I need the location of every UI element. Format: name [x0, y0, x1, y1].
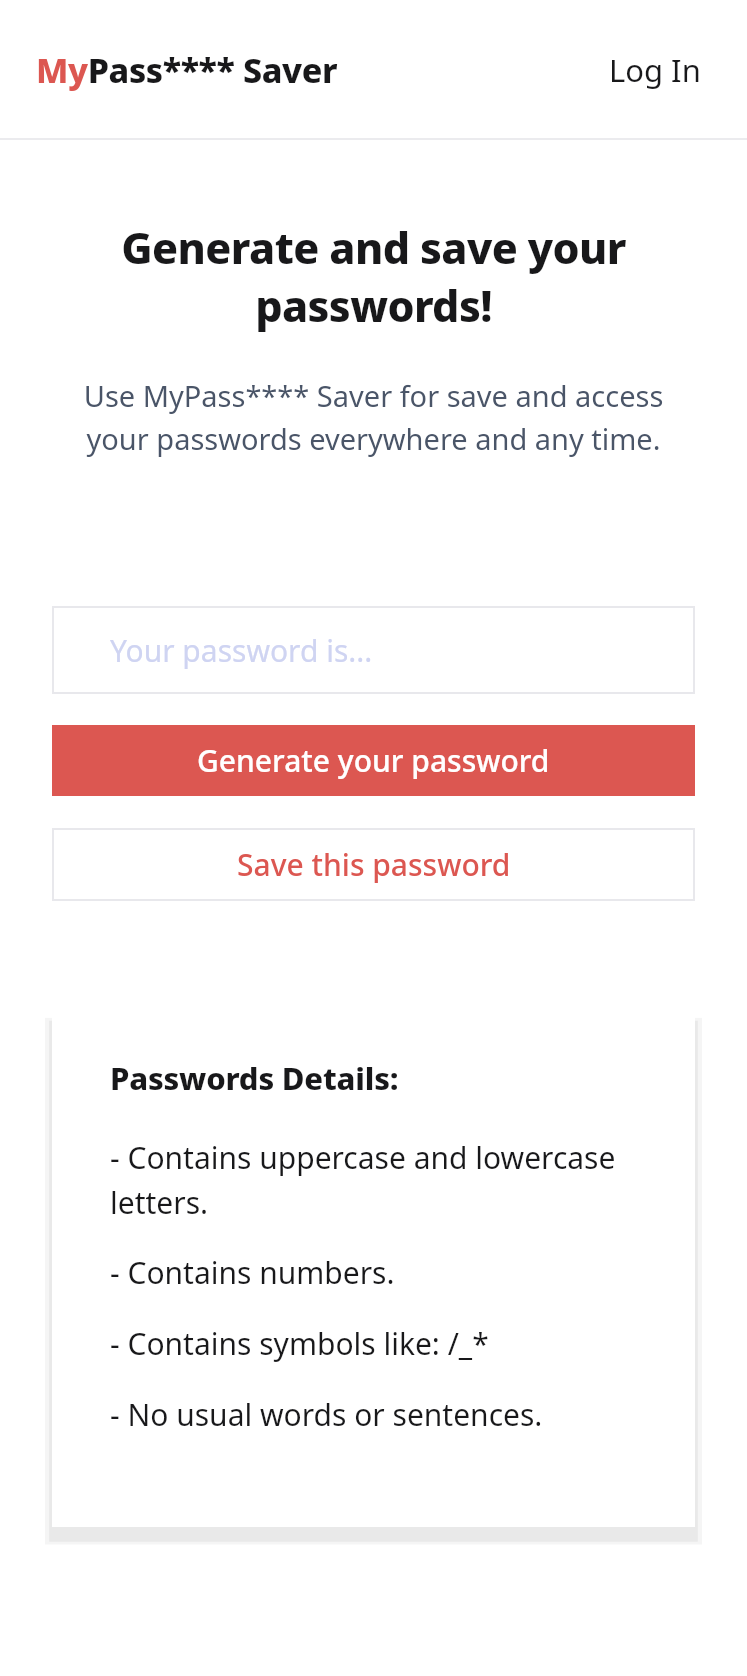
- staticText: Generate your password: [197, 740, 550, 781]
- staticText: Your password is...: [110, 630, 373, 671]
- button[interactable]: Your password is...: [52, 606, 695, 694]
- staticText: - Contains symbols like: /_*: [110, 1323, 655, 1364]
- staticText: Use MyPass**** Saver for save and access…: [52, 376, 695, 458]
- staticText: - No usual words or sentences.: [110, 1394, 655, 1435]
- staticText: - Contains numbers.: [110, 1252, 655, 1293]
- button[interactable]: Passwords Details:: [52, 1013, 695, 1527]
- button[interactable]: MyPass**** Saver: [36, 47, 338, 93]
- button[interactable]: Save this password: [52, 828, 695, 901]
- staticText: Save this password: [237, 844, 511, 885]
- button[interactable]: Generate your password: [52, 725, 695, 796]
- staticText: Passwords Details:: [110, 1057, 399, 1099]
- staticText: Generate and save your passwords!: [52, 218, 695, 334]
- staticText: Log In: [609, 49, 701, 91]
- staticText: - Contains uppercase and lowercase lette…: [110, 1137, 655, 1222]
- button[interactable]: Log In: [603, 43, 707, 97]
